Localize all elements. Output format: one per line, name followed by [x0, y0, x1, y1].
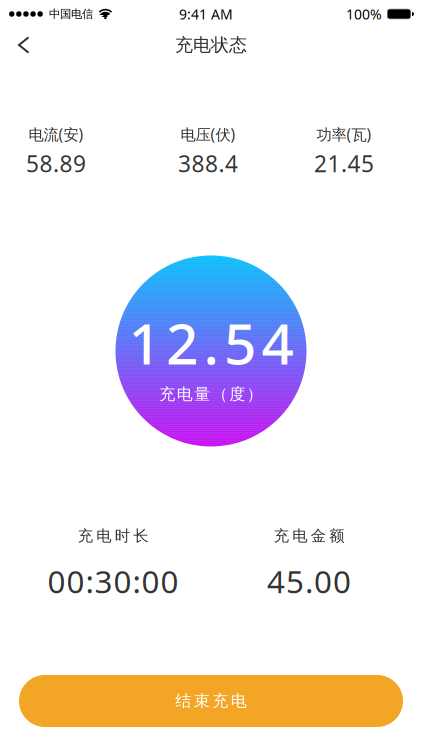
staticText: 45.00	[267, 560, 351, 602]
staticText: 电流(安)	[28, 124, 83, 144]
button[interactable]: Back	[0, 28, 30, 61]
staticText: 充电时长	[78, 526, 148, 545]
staticText: 9:41 AM	[179, 5, 233, 23]
staticText: 充电量（度）	[159, 384, 263, 404]
staticText: 充电状态	[175, 34, 247, 56]
staticText: 功率(瓦)	[316, 124, 371, 144]
staticText: 00:30:00	[47, 560, 178, 602]
staticText: 中国电信	[49, 7, 93, 21]
staticText: 21.45	[314, 148, 374, 178]
staticText: 58.89	[26, 148, 86, 178]
staticText: 12.54	[128, 305, 293, 380]
staticText: 结束充电	[175, 691, 247, 711]
button[interactable]: 结束充电	[19, 675, 403, 727]
staticText: 电压(伏)	[180, 124, 235, 144]
staticText: 充电金额	[274, 526, 344, 545]
staticText: 100%	[346, 5, 382, 23]
staticText: 388.4	[178, 148, 238, 178]
